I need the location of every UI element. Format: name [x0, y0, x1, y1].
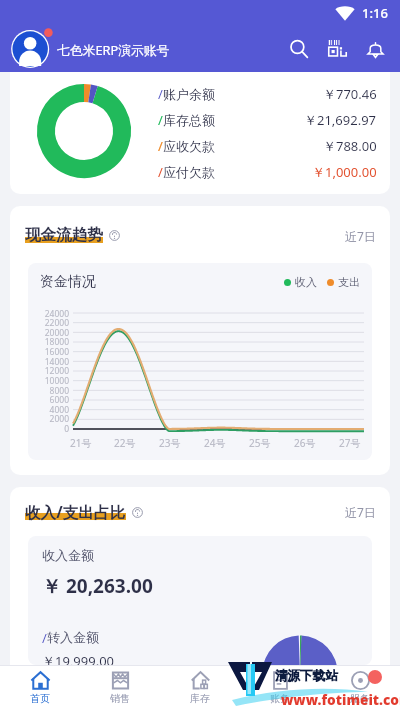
staticText: 10000: [44, 375, 69, 387]
staticText: ￥1,000.00: [312, 163, 377, 181]
staticText: 收入金额: [42, 547, 94, 563]
button[interactable]: 账务: [240, 665, 320, 710]
button[interactable]: Notifications: [358, 32, 392, 66]
staticText: /: [158, 137, 163, 155]
staticText: 14000: [44, 356, 69, 368]
staticText: 服务: [350, 692, 370, 705]
button[interactable]: 服务: [320, 665, 400, 710]
staticText: 资金情况: [40, 273, 96, 291]
staticText: 应付欠款: [163, 164, 215, 180]
staticText: 支出: [338, 275, 360, 289]
staticText: 27号: [339, 436, 361, 450]
staticText: 0: [64, 423, 69, 435]
button[interactable]: Search: [282, 32, 316, 66]
staticText: www.fotimeit.com: [281, 690, 400, 709]
staticText: 4000: [49, 404, 69, 416]
staticText: 销售: [110, 692, 130, 705]
staticText: /: [158, 163, 163, 181]
staticText: 收入: [295, 275, 317, 289]
staticText: 七色米ERP演示账号: [57, 41, 170, 58]
button[interactable]: Scan barcode: [320, 32, 354, 66]
staticText: /: [42, 629, 47, 647]
staticText: 账务: [270, 692, 290, 705]
staticText: ￥21,692.97: [304, 111, 377, 129]
staticText: 近7日: [345, 504, 376, 520]
staticText: 24号: [204, 436, 226, 450]
staticText: 1:16: [362, 4, 388, 22]
staticText: /: [158, 111, 163, 129]
staticText: 18000: [44, 336, 69, 348]
staticText: 23号: [159, 436, 181, 450]
staticText: 6000: [49, 394, 69, 406]
staticText: 账户余额: [163, 86, 215, 102]
staticText: 现金流趋势: [25, 225, 103, 245]
staticText: 近7日: [345, 228, 376, 244]
staticText: 2000: [49, 413, 69, 425]
staticText: 首页: [30, 692, 50, 705]
staticText: 8000: [49, 385, 69, 397]
staticText: 25号: [249, 436, 271, 450]
button[interactable]: 销售: [80, 665, 160, 710]
staticText: 22000: [44, 317, 69, 329]
staticText: 26号: [294, 436, 316, 450]
staticText: 库存: [190, 692, 210, 705]
staticText: 库存总额: [163, 112, 215, 128]
staticText: 清源下载站: [275, 668, 338, 684]
staticText: 22号: [114, 436, 136, 450]
staticText: 应收欠款: [163, 138, 215, 154]
staticText: 21号: [70, 436, 92, 450]
staticText: 转入金额: [47, 629, 99, 645]
staticText: ￥ 20,263.00: [42, 573, 153, 599]
staticText: ￥770.46: [323, 85, 377, 103]
staticText: 16000: [44, 346, 69, 358]
button[interactable]: 首页: [0, 665, 80, 710]
button[interactable]: /: [10, 72, 390, 194]
staticText: /: [158, 85, 163, 103]
staticText: 20000: [44, 327, 69, 339]
staticText: ￥788.00: [323, 137, 377, 155]
staticText: 收入/支出占比: [25, 501, 126, 522]
staticText: ￥19,999.00: [42, 652, 115, 665]
button[interactable]: 库存: [160, 665, 240, 710]
staticText: 24000: [44, 308, 69, 320]
button[interactable]: Account avatar: [9, 26, 55, 72]
staticText: 12000: [44, 365, 69, 377]
